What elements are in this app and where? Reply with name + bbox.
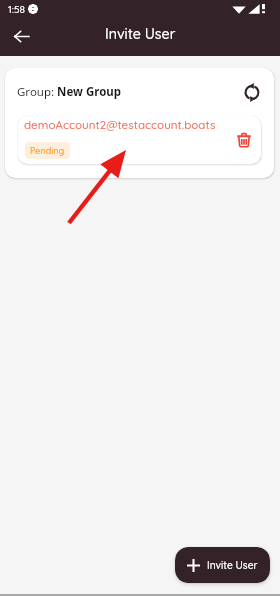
staticText: Group: New Group [17,84,122,100]
staticText: Invite User [105,25,176,43]
button[interactable]: Back [7,22,35,50]
staticText: Pending [30,145,65,156]
staticText: Invite User [207,559,258,572]
button[interactable]: Invite User [175,547,270,583]
button[interactable]: demoAccount2@testaccount.boats [18,116,261,164]
button[interactable]: Delete [231,127,257,153]
button[interactable]: Refresh [237,77,267,107]
staticText: 1:58 [8,3,25,16]
staticText: demoAccount2@testaccount.boats [24,117,216,132]
